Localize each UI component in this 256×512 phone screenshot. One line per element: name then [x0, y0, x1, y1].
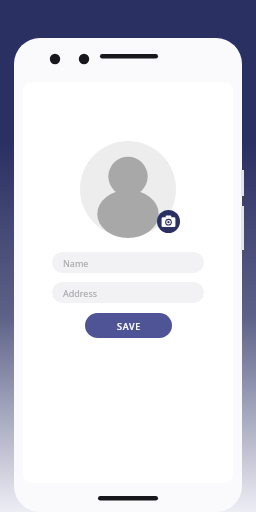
button[interactable]: Change profile photo: [80, 141, 176, 237]
button[interactable]: Take photo: [157, 210, 180, 233]
staticText: SAVE: [117, 320, 141, 332]
button[interactable]: Address: [52, 282, 204, 303]
button[interactable]: SAVE: [85, 313, 172, 338]
staticText: Address: [63, 287, 98, 299]
staticText: Name: [63, 257, 89, 269]
button[interactable]: Name: [52, 252, 204, 273]
